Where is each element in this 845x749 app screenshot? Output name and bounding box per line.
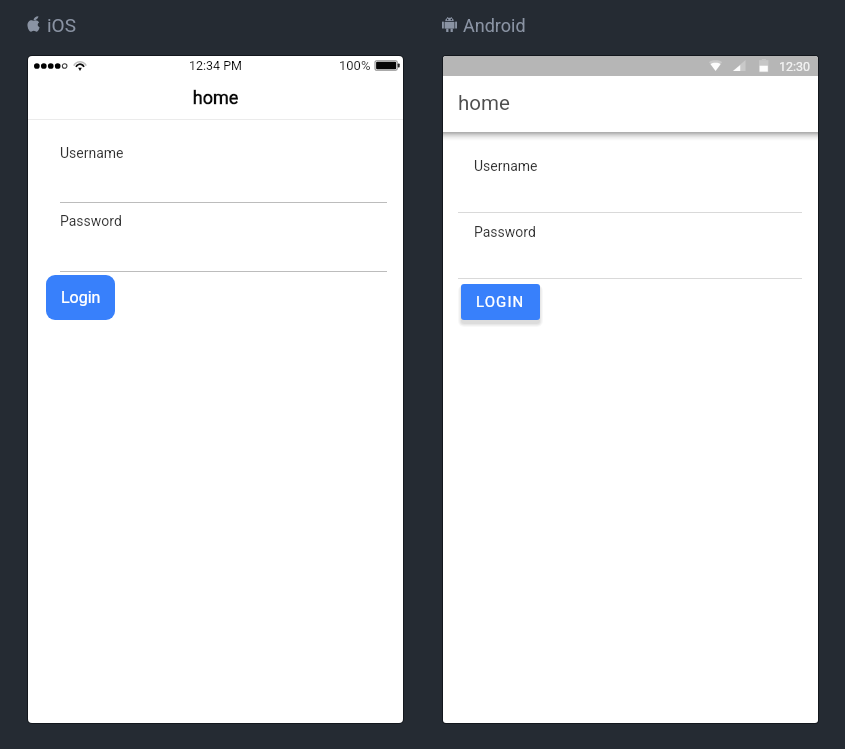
staticText: 12:34 PM bbox=[28, 58, 403, 73]
button[interactable]: LOGIN bbox=[461, 284, 540, 320]
other: Android bbox=[442, 17, 457, 32]
staticText: Username bbox=[474, 158, 538, 174]
staticText: Password bbox=[60, 213, 122, 229]
button[interactable]: Login bbox=[46, 275, 115, 320]
other: Apple bbox=[27, 16, 40, 32]
staticText: Username bbox=[60, 145, 124, 161]
staticText: 12:30 bbox=[779, 59, 811, 74]
staticText: 100% bbox=[339, 58, 371, 73]
staticText: home bbox=[458, 91, 510, 115]
button[interactable]: Username bbox=[60, 139, 387, 203]
button[interactable]: Password bbox=[60, 207, 387, 272]
staticText: iOS bbox=[47, 14, 76, 36]
staticText: Android bbox=[463, 15, 526, 36]
button[interactable]: Password bbox=[458, 218, 802, 279]
staticText: home bbox=[28, 87, 403, 108]
staticText: LOGIN bbox=[476, 293, 525, 311]
staticText: Password bbox=[474, 224, 536, 240]
staticText: Login bbox=[61, 288, 101, 307]
button[interactable]: Username bbox=[458, 152, 802, 213]
